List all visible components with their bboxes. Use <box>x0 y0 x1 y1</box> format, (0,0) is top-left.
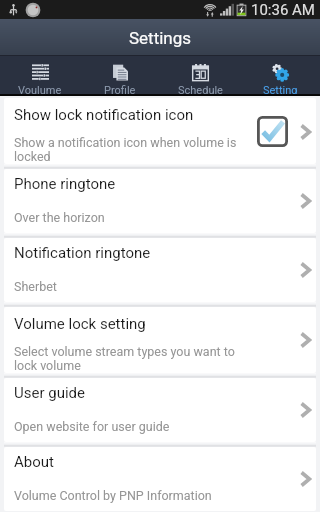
staticText: Volume Control by PNP Information <box>14 488 212 503</box>
staticText: Select volume stream types you want to l… <box>14 344 246 373</box>
staticText: Show a notification icon when volume is … <box>14 135 246 164</box>
staticText: Phone ringtone <box>14 175 116 193</box>
button[interactable]: Setting <box>240 56 320 94</box>
staticText: Voulume <box>18 84 62 94</box>
button[interactable]: Show lock notification icon checkbox <box>257 116 288 147</box>
staticText: About <box>14 453 54 471</box>
staticText: 10:36 AM <box>251 1 315 19</box>
staticText: Volume lock setting <box>14 315 146 333</box>
staticText: Sherbet <box>14 279 57 294</box>
staticText: Open website for user guide <box>14 419 170 434</box>
button[interactable]: Volume lock setting <box>4 307 316 373</box>
button[interactable]: Schedule <box>160 56 240 94</box>
button[interactable]: Voulume <box>0 56 80 94</box>
staticText: Over the horizon <box>14 210 105 225</box>
staticText: Show lock notification icon <box>14 106 194 124</box>
button[interactable]: Show lock notification icon <box>4 98 316 164</box>
button[interactable]: User guide <box>4 378 316 442</box>
staticText: Settings <box>129 28 192 48</box>
button[interactable]: Notification ringtone <box>4 238 316 302</box>
button[interactable]: Profile <box>80 56 160 94</box>
staticText: Setting <box>263 84 298 94</box>
staticText: Notification ringtone <box>14 244 151 262</box>
button[interactable]: About <box>4 447 316 511</box>
staticText: User guide <box>14 384 85 402</box>
staticText: Schedule <box>178 84 223 94</box>
button[interactable]: Phone ringtone <box>4 169 316 233</box>
staticText: Profile <box>104 84 136 94</box>
